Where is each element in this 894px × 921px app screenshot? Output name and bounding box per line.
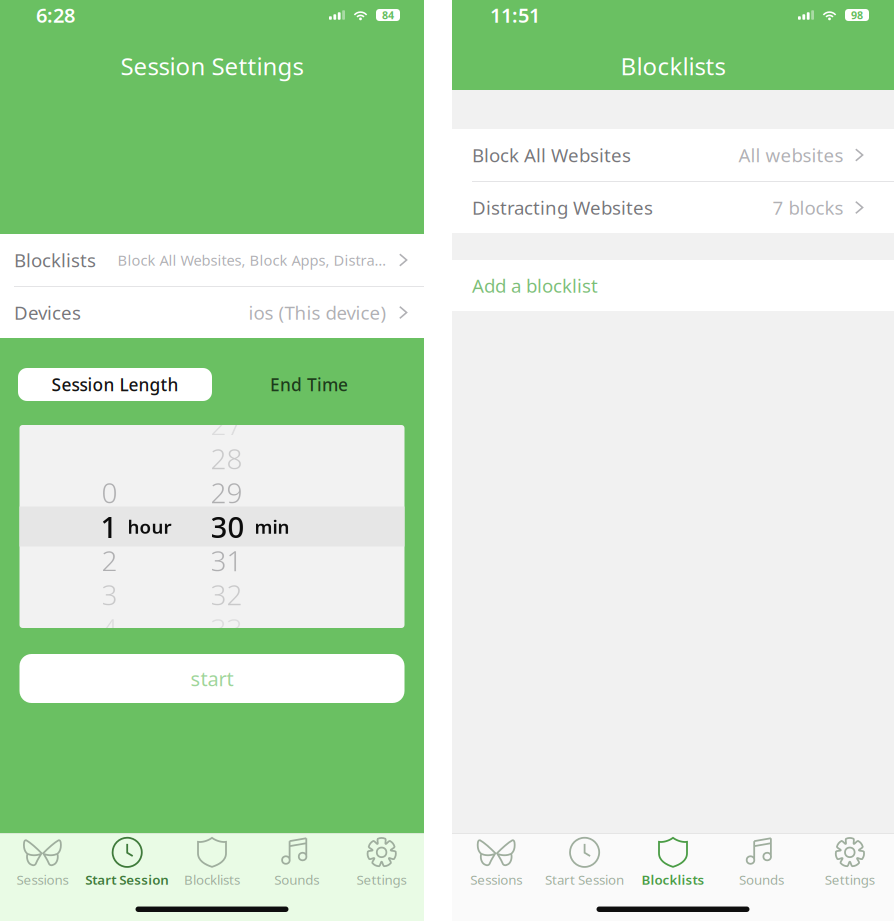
button[interactable]: Sessions [452,838,540,888]
button[interactable]: Devices [0,287,424,338]
staticText: Devices [14,300,81,325]
staticText: 32 [210,576,242,613]
staticText: Distracting Websites [472,195,653,220]
staticText: Session Settings [120,50,303,82]
staticText: Session Length [51,373,178,396]
staticText: 0 [101,474,117,511]
button[interactable]: Start Session [540,838,629,888]
staticText: All websites [739,143,844,167]
staticText: 6:28 [36,2,75,28]
button[interactable]: Sounds [717,838,806,888]
staticText: Sounds [274,871,319,888]
staticText: 1 [100,507,117,546]
staticText: 3 [101,576,117,613]
staticText: Sessions [470,871,522,888]
staticText: hour [127,514,171,539]
staticText: End Time [270,373,348,396]
staticText: Block All Websites [472,143,631,167]
staticText: 2 [101,542,117,579]
staticText: 29 [210,474,242,511]
staticText: Blocklists [620,50,725,82]
button[interactable]: Add a blocklist [452,260,894,311]
staticText: Add a blocklist [472,273,598,298]
staticText: Block All Websites, Block Apps, Distra… [118,250,387,270]
button[interactable]: Session Length [18,368,212,401]
button[interactable]: Blocklists [170,838,254,888]
button[interactable]: Settings [339,838,424,888]
staticText: start [190,665,233,692]
staticText: min [254,514,289,539]
staticText: Blocklists [184,871,240,888]
staticText: 31 [210,542,242,579]
staticText: Sessions [16,871,68,888]
button[interactable]: Blocklists [629,838,717,888]
staticText: 28 [210,440,242,477]
button[interactable]: End Time [212,368,406,401]
staticText: Blocklists [14,248,96,272]
staticText: Sounds [739,871,784,888]
staticText: Start Session [85,871,169,888]
staticText: 98 [851,8,863,22]
staticText: 30 [210,507,244,546]
staticText: 11:51 [490,2,540,28]
staticText: ios (This device) [249,300,387,325]
staticText: Settings [357,871,407,888]
staticText: 27 [210,406,242,443]
staticText: Start Session [545,871,624,888]
button[interactable]: Sessions [0,838,85,888]
button[interactable]: Block All Websites [452,129,894,181]
staticText: 84 [382,8,394,22]
button[interactable]: Settings [806,838,894,888]
staticText: 33 [210,610,242,647]
button[interactable]: Sounds [254,838,339,888]
staticText: 4 [101,610,117,647]
button[interactable]: Start Session [85,838,170,888]
staticText: Settings [825,871,875,888]
staticText: Blocklists [641,871,704,888]
staticText: 7 blocks [773,195,844,220]
button[interactable]: start [19,654,404,703]
button[interactable]: Blocklists [0,234,424,286]
button[interactable]: Distracting Websites [452,182,894,233]
